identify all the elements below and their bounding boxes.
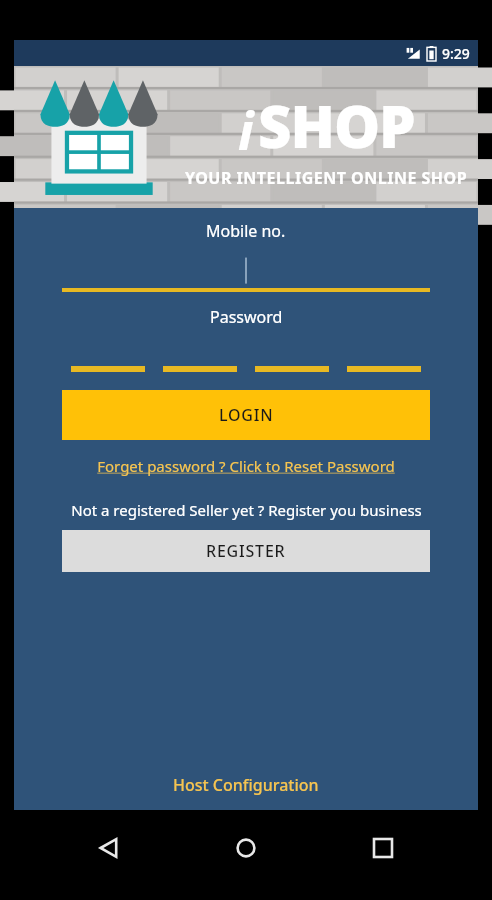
staticText: Forget password ? Click to Reset Passwor… xyxy=(97,456,395,476)
staticText: Not a registered Seller yet ? Register y… xyxy=(71,500,422,520)
staticText: Mobile no. xyxy=(206,220,286,242)
button[interactable]: Back xyxy=(81,820,137,876)
button[interactable]: REGISTER xyxy=(62,530,430,572)
button[interactable]: Recent apps xyxy=(355,820,411,876)
staticText: LOGIN xyxy=(219,404,274,426)
staticText: Host Configuration xyxy=(173,774,319,796)
button[interactable]: Host Configuration xyxy=(14,774,478,796)
staticText: YOUR INTELLIGENT ONLINE SHOP xyxy=(185,167,468,189)
staticText: REGISTER xyxy=(206,540,286,562)
staticText: i xyxy=(238,94,254,165)
button[interactable]: LOGIN xyxy=(62,390,430,440)
button[interactable] xyxy=(62,366,430,372)
staticText: 9:29 xyxy=(442,44,470,63)
staticText: SHOP xyxy=(258,86,415,165)
staticText: Password xyxy=(210,306,283,328)
button[interactable] xyxy=(62,250,430,292)
button[interactable]: Forget password ? Click to Reset Passwor… xyxy=(54,456,438,476)
button[interactable]: Home xyxy=(218,820,274,876)
